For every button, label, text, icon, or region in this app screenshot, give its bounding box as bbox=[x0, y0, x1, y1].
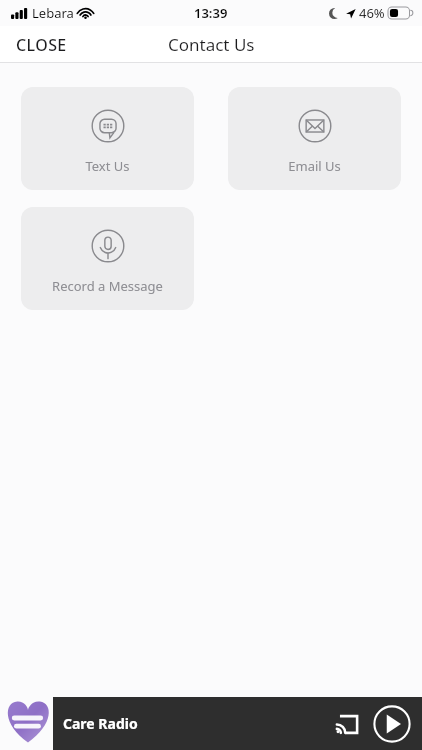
staticText: Care Radio bbox=[63, 714, 138, 733]
button[interactable]: Care Radio bbox=[53, 697, 422, 750]
staticText: Text Us bbox=[85, 157, 130, 175]
staticText: 13:39 bbox=[194, 4, 228, 22]
staticText: 46% bbox=[359, 4, 385, 22]
button[interactable]: Care Radio logo bbox=[0, 692, 55, 750]
button[interactable]: Record a Message bbox=[21, 207, 194, 310]
button[interactable]: Play bbox=[370, 702, 414, 746]
staticText: Email Us bbox=[288, 157, 341, 175]
button[interactable]: Cast bbox=[328, 705, 366, 743]
staticText: Contact Us bbox=[168, 33, 255, 56]
button[interactable]: CLOSE bbox=[0, 28, 83, 62]
button[interactable]: Text Us bbox=[21, 87, 194, 190]
button[interactable]: Email Us bbox=[228, 87, 401, 190]
staticText: Lebara bbox=[32, 4, 74, 22]
staticText: CLOSE bbox=[16, 34, 67, 56]
staticText: Record a Message bbox=[52, 277, 163, 295]
